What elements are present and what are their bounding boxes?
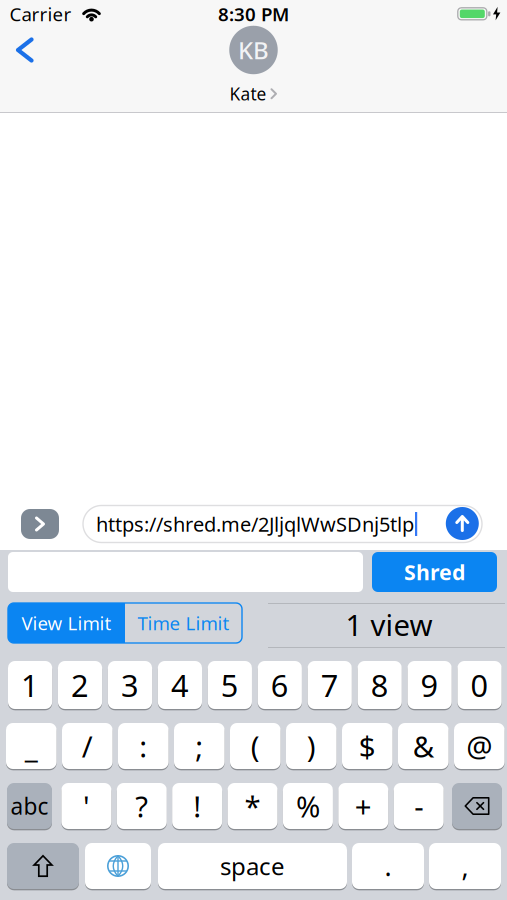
staticText: ) (307, 726, 316, 765)
staticText: @ (466, 726, 492, 765)
staticText: : (139, 726, 147, 765)
button[interactable]: 0 (457, 661, 502, 709)
button[interactable]: KB (229, 26, 278, 105)
staticText: % (296, 786, 320, 825)
staticText: ; (195, 726, 203, 765)
button[interactable]: 8 (358, 661, 402, 709)
button[interactable]: ' (61, 783, 111, 829)
staticText: + (355, 786, 372, 825)
button[interactable]: ; (174, 723, 225, 769)
staticText: Kate (229, 82, 266, 105)
button[interactable]: Delete (452, 783, 502, 829)
staticText: Time Limit (137, 611, 229, 635)
staticText: 0 (471, 665, 489, 705)
staticText: . (384, 848, 391, 884)
button[interactable]: ! (172, 783, 222, 829)
button[interactable]: ? (117, 783, 167, 829)
button[interactable]: abc (7, 783, 52, 829)
staticText: , (461, 848, 468, 884)
staticText: KB (238, 34, 269, 66)
staticText: View Limit (21, 611, 111, 635)
button[interactable]: 2 (58, 661, 102, 709)
staticText: https://shred.me/2JljqlWwSDnj5tlp (96, 511, 414, 537)
staticText: 2 (71, 665, 89, 705)
staticText: _ (25, 726, 38, 765)
button[interactable]: Back (5, 27, 43, 72)
staticText: * (244, 786, 260, 825)
button[interactable]: Shift (7, 843, 79, 889)
staticText: ! (193, 786, 201, 825)
staticText: 5 (221, 665, 239, 705)
button[interactable]: $ (342, 723, 393, 769)
staticText: 9 (421, 665, 439, 705)
staticText: ( (251, 726, 260, 765)
button[interactable]: % (283, 783, 333, 829)
button[interactable]: 6 (258, 661, 302, 709)
button[interactable]: ( (230, 723, 281, 769)
button[interactable]: Send (446, 507, 479, 540)
staticText: / (82, 726, 93, 765)
staticText: abc (10, 791, 48, 821)
staticText: - (414, 786, 423, 825)
button[interactable]: & (398, 723, 449, 769)
staticText: & (413, 726, 434, 765)
button[interactable]: 3 (108, 661, 152, 709)
button[interactable]: space (158, 843, 347, 889)
button[interactable]: 4 (158, 661, 202, 709)
button[interactable]: Shred (372, 552, 497, 592)
button[interactable]: * (227, 783, 277, 829)
button[interactable]: ) (286, 723, 337, 769)
button[interactable]: 5 (208, 661, 252, 709)
button[interactable]: iMessage apps (21, 509, 59, 539)
button[interactable]: 9 (407, 661, 452, 709)
staticText: 1 view (345, 605, 432, 644)
button[interactable]: + (338, 783, 388, 829)
button[interactable]: 1 (8, 661, 52, 709)
button[interactable]: https://shred.me/2JljqlWwSDnj5tlp (83, 505, 482, 542)
staticText: 8 (371, 665, 389, 705)
staticText: 3 (121, 665, 139, 705)
staticText: $ (359, 726, 376, 765)
button[interactable]: - (394, 783, 444, 829)
button[interactable]: . (352, 843, 424, 889)
staticText: 6 (271, 665, 289, 705)
staticText: 8:30 PM (218, 2, 289, 26)
staticText: 4 (171, 665, 189, 705)
button[interactable]: _ (6, 723, 57, 769)
button[interactable]: : (118, 723, 169, 769)
staticText: 7 (321, 665, 339, 705)
staticText: ? (135, 786, 148, 825)
staticText: Shred (404, 558, 465, 586)
staticText: space (220, 850, 285, 882)
button[interactable]: View Limit (8, 603, 125, 643)
staticText: ' (83, 786, 90, 825)
button[interactable]: Next keyboard (85, 843, 151, 889)
button[interactable]: 7 (308, 661, 352, 709)
staticText: 1 (21, 665, 39, 705)
button[interactable]: / (62, 723, 113, 769)
button[interactable]: , (429, 843, 501, 889)
button[interactable]: @ (454, 723, 505, 769)
staticText: Carrier (9, 2, 71, 26)
button[interactable]: Time Limit (125, 603, 242, 643)
